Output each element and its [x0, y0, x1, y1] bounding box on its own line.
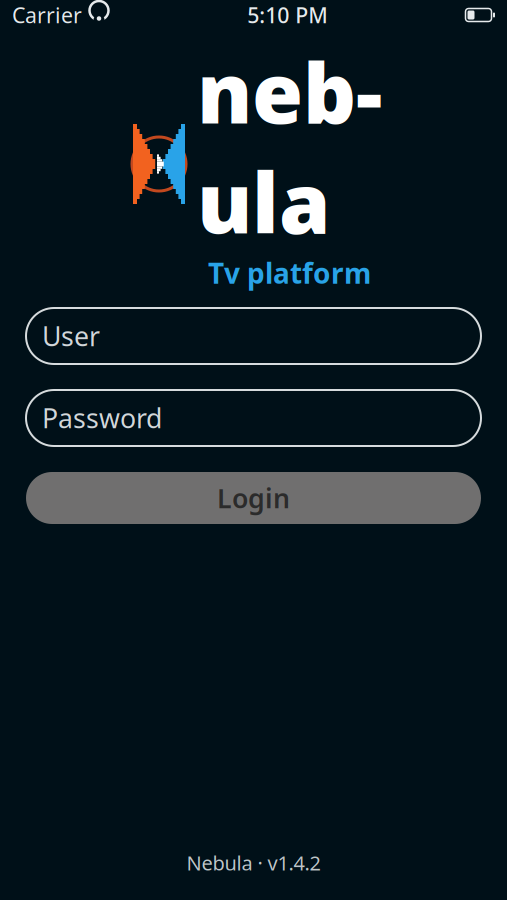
button[interactable]: Login [26, 472, 481, 524]
staticText: User [42, 318, 100, 354]
staticText: Nebula · v1.4.2 [186, 849, 320, 876]
button[interactable]: Password [26, 390, 481, 446]
staticText: 5:10 PM [247, 1, 328, 29]
staticText: Tv platform [208, 254, 371, 291]
staticText: Login [217, 480, 290, 516]
staticText: Carrier [12, 1, 82, 29]
button[interactable]: User [26, 308, 481, 364]
staticText: Password [42, 400, 162, 436]
staticText: nebula [197, 37, 382, 256]
